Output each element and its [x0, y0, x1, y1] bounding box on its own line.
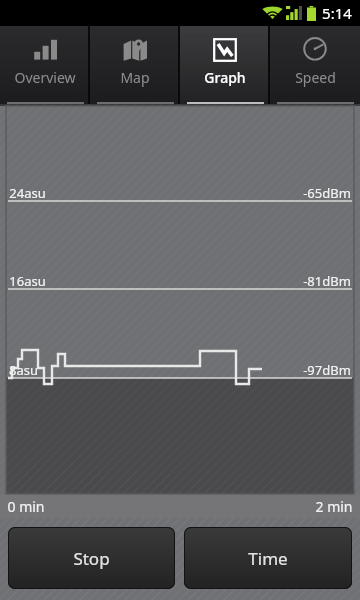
staticText: 8asu [9, 361, 38, 379]
staticText: 0 min [7, 497, 45, 516]
staticText: 24asu [9, 184, 46, 202]
button[interactable]: Stop [8, 527, 175, 589]
button[interactable]: Map [90, 26, 180, 104]
staticText: -65dBm [303, 184, 351, 202]
button[interactable]: Graph [180, 26, 270, 104]
staticText: 16asu [9, 272, 46, 290]
staticText: -81dBm [303, 272, 351, 290]
staticText: 5:14 [322, 3, 352, 23]
staticText: Overview [14, 68, 76, 87]
staticText: Stop [73, 547, 110, 570]
staticText: -97dBm [303, 361, 351, 379]
staticText: 2 min [315, 497, 353, 516]
button[interactable]: Overview [0, 26, 90, 104]
button[interactable]: Speed [270, 26, 360, 104]
staticText: Speed [295, 68, 336, 87]
button[interactable]: Time [184, 527, 352, 589]
staticText: Time [248, 547, 288, 570]
staticText: Graph [204, 68, 246, 87]
staticText: Map [120, 68, 150, 87]
